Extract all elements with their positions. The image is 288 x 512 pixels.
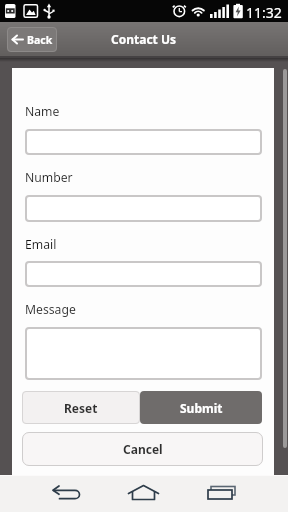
- button[interactable]: Cancel: [22, 432, 263, 466]
- button[interactable]: [25, 261, 262, 287]
- button[interactable]: [25, 195, 262, 222]
- button[interactable]: Reset: [22, 391, 140, 424]
- staticText: Cancel: [123, 441, 163, 457]
- staticText: Contact Us: [111, 31, 177, 47]
- button[interactable]: [202, 479, 242, 507]
- staticText: Message: [25, 301, 76, 318]
- staticText: Back: [27, 33, 53, 47]
- staticText: Submit: [180, 400, 223, 416]
- button[interactable]: Submit: [140, 391, 262, 424]
- button[interactable]: Back: [7, 27, 57, 52]
- button[interactable]: [25, 129, 262, 155]
- staticText: Reset: [64, 400, 98, 416]
- button[interactable]: [25, 327, 262, 380]
- button[interactable]: [126, 479, 162, 507]
- staticText: 11:32: [246, 3, 282, 22]
- button[interactable]: [44, 479, 88, 507]
- staticText: Name: [25, 103, 60, 120]
- staticText: Number: [25, 169, 73, 186]
- staticText: Email: [25, 236, 57, 253]
